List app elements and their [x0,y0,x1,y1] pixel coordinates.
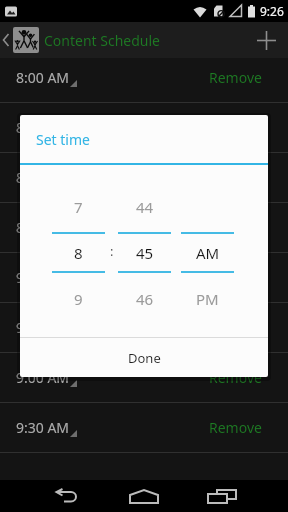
staticText: 8:45 AM [16,218,70,237]
staticText: 8:00 AM [16,68,70,87]
staticText: Remove [209,268,262,287]
button[interactable]: Remove [209,68,262,87]
button[interactable]: 9:00 AM [0,353,288,402]
staticText: 9:26 [260,3,284,19]
staticText: Content Schedule [44,31,160,50]
button[interactable]: Content Schedule [0,22,160,58]
staticText: 9:00 AM [16,368,70,387]
staticText: Done [128,349,161,367]
staticText: : [110,242,114,260]
button[interactable]: Remove [209,418,262,437]
staticText: Remove [209,418,262,437]
button[interactable] [197,480,247,512]
staticText: 9:15 AM [16,318,70,337]
staticText: 9:30 AM [16,418,70,437]
staticText: 46 [136,289,154,309]
button[interactable] [41,480,91,512]
button[interactable]: 8:45 AM [0,203,288,252]
staticText: Set time [36,130,90,149]
button[interactable]: Done [20,338,268,377]
button[interactable] [119,480,169,512]
staticText: 7 [74,197,83,217]
staticText: 9 [74,289,83,309]
staticText: 8 [74,243,83,263]
staticText: Remove [209,68,262,87]
button[interactable]: 9:30 AM [0,403,288,452]
button[interactable]: 8 [52,240,105,265]
button[interactable]: Remove [209,218,262,237]
staticText: 44 [136,197,154,217]
button[interactable]: 8:00 AM [0,58,288,102]
staticText: PM [196,289,219,309]
staticText: 45 [136,243,154,263]
button[interactable] [248,22,284,58]
button[interactable]: 9:15 AM [0,303,288,352]
staticText: 9:00 AM [16,268,70,287]
staticText: Remove [209,368,262,387]
button[interactable]: 9:00 AM [0,253,288,302]
staticText: 8:30 AM [16,168,70,187]
staticText: Remove [209,218,262,237]
button[interactable]: 8:30 AM [0,153,288,202]
button[interactable]: Remove [209,368,262,387]
button[interactable]: 8:15 AM [0,103,288,152]
button[interactable]: Remove [209,268,262,287]
staticText: 8:15 AM [16,118,70,137]
staticText: AM [196,243,220,263]
button[interactable]: AM [181,240,234,265]
button[interactable]: 45 [118,240,171,265]
